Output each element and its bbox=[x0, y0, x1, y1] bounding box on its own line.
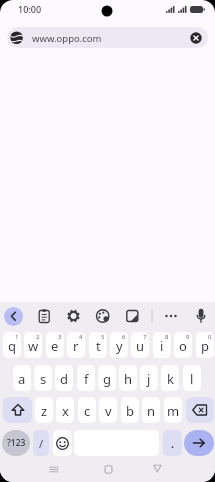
staticText: . bbox=[171, 436, 175, 451]
button[interactable] bbox=[190, 32, 202, 44]
button[interactable]: j bbox=[140, 365, 158, 391]
staticText: d bbox=[60, 370, 68, 388]
button[interactable] bbox=[65, 307, 83, 325]
button[interactable]: d bbox=[55, 365, 73, 391]
button[interactable]: c bbox=[78, 397, 96, 423]
staticText: e bbox=[51, 337, 59, 355]
staticText: 4 bbox=[79, 333, 83, 341]
staticText: a bbox=[18, 370, 26, 388]
staticText: 3 bbox=[58, 333, 62, 341]
button[interactable] bbox=[162, 307, 180, 325]
staticText: r bbox=[73, 337, 79, 355]
staticText: u bbox=[136, 337, 145, 355]
staticText: www.oppo.com bbox=[32, 32, 102, 45]
button[interactable]: g bbox=[98, 365, 116, 391]
button[interactable] bbox=[184, 430, 214, 456]
staticText: y bbox=[116, 337, 123, 355]
button[interactable]: v bbox=[99, 397, 117, 423]
button[interactable]: u bbox=[131, 332, 149, 358]
button[interactable]: m bbox=[164, 397, 182, 423]
button[interactable]: www.oppo.com bbox=[7, 27, 208, 48]
button[interactable]: k bbox=[161, 365, 179, 391]
button[interactable]: w bbox=[24, 332, 42, 358]
staticText: ?123 bbox=[7, 437, 26, 449]
staticText: f bbox=[84, 370, 89, 388]
button[interactable]: z bbox=[35, 397, 53, 423]
staticText: c bbox=[84, 402, 91, 420]
staticText: q bbox=[8, 337, 16, 355]
button[interactable]: i bbox=[153, 332, 171, 358]
staticText: 10:00 bbox=[18, 3, 42, 15]
staticText: x bbox=[62, 402, 69, 420]
button[interactable] bbox=[148, 461, 166, 479]
button[interactable]: s bbox=[34, 365, 52, 391]
staticText: 6 bbox=[122, 333, 126, 341]
staticText: g bbox=[103, 370, 111, 388]
staticText: h bbox=[124, 370, 133, 388]
button[interactable] bbox=[45, 461, 63, 479]
staticText: 1 bbox=[15, 333, 19, 341]
button[interactable]: l bbox=[183, 365, 201, 391]
button[interactable]: n bbox=[142, 397, 160, 423]
button[interactable]: r bbox=[67, 332, 85, 358]
button[interactable] bbox=[186, 397, 214, 423]
button[interactable] bbox=[94, 307, 112, 325]
button[interactable] bbox=[123, 307, 141, 325]
button[interactable]: e bbox=[46, 332, 64, 358]
staticText: t bbox=[96, 337, 101, 355]
staticText: l bbox=[190, 370, 194, 388]
button[interactable] bbox=[3, 397, 32, 423]
staticText: 7 bbox=[143, 333, 147, 341]
staticText: b bbox=[126, 402, 134, 420]
button[interactable] bbox=[53, 430, 72, 456]
button[interactable]: b bbox=[121, 397, 139, 423]
button[interactable] bbox=[35, 307, 53, 325]
button[interactable]: t bbox=[89, 332, 107, 358]
staticText: 0 bbox=[208, 333, 212, 341]
button[interactable] bbox=[100, 461, 118, 479]
staticText: z bbox=[41, 402, 48, 420]
staticText: i bbox=[160, 337, 164, 355]
button[interactable]: a bbox=[13, 365, 31, 391]
staticText: w bbox=[28, 337, 39, 355]
button[interactable]: f bbox=[77, 365, 95, 391]
staticText: m bbox=[167, 402, 180, 420]
button[interactable]: o bbox=[174, 332, 192, 358]
staticText: n bbox=[147, 402, 156, 420]
staticText: o bbox=[179, 337, 187, 355]
button[interactable]: p bbox=[196, 332, 214, 358]
staticText: / bbox=[39, 436, 44, 451]
button[interactable]: . bbox=[163, 430, 182, 456]
staticText: 8 bbox=[165, 333, 169, 341]
staticText: 5 bbox=[101, 333, 105, 341]
button[interactable] bbox=[192, 307, 210, 325]
staticText: v bbox=[105, 402, 112, 420]
staticText: j bbox=[147, 370, 151, 388]
button[interactable]: y bbox=[110, 332, 128, 358]
staticText: 9 bbox=[186, 333, 190, 341]
button[interactable]: q bbox=[3, 332, 21, 358]
button[interactable]: x bbox=[56, 397, 74, 423]
staticText: p bbox=[201, 337, 209, 355]
button[interactable]: h bbox=[119, 365, 137, 391]
button[interactable]: / bbox=[33, 430, 49, 456]
staticText: k bbox=[167, 370, 174, 388]
button[interactable] bbox=[4, 307, 23, 326]
staticText: s bbox=[40, 370, 47, 388]
button[interactable]: ?123 bbox=[2, 430, 30, 456]
staticText: 2 bbox=[36, 333, 40, 341]
